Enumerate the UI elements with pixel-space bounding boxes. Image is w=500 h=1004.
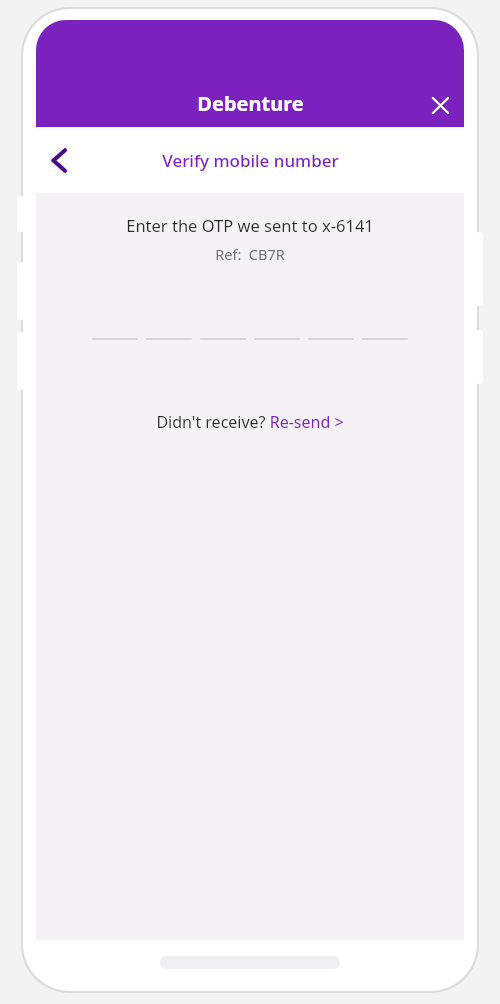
staticText: Enter the OTP we sent to x-6141 [126,214,374,236]
button[interactable]: Close [418,83,462,127]
staticText: Didn't receive? Re-send > [156,411,344,433]
button[interactable]: Back [36,137,82,183]
button[interactable]: OTP digit field [92,316,138,340]
button[interactable]: OTP digit field [362,316,408,340]
staticText: Ref: CB7R [215,244,285,264]
staticText: Verify mobile number [162,149,339,172]
button[interactable]: OTP digit field [254,316,300,340]
button[interactable]: OTP digit field [308,316,354,340]
button[interactable]: OTP digit field [146,316,192,340]
button[interactable]: Didn't receive? Re-send > [152,409,348,435]
button[interactable]: OTP digit field [200,316,246,340]
staticText: Debenture [197,90,304,117]
